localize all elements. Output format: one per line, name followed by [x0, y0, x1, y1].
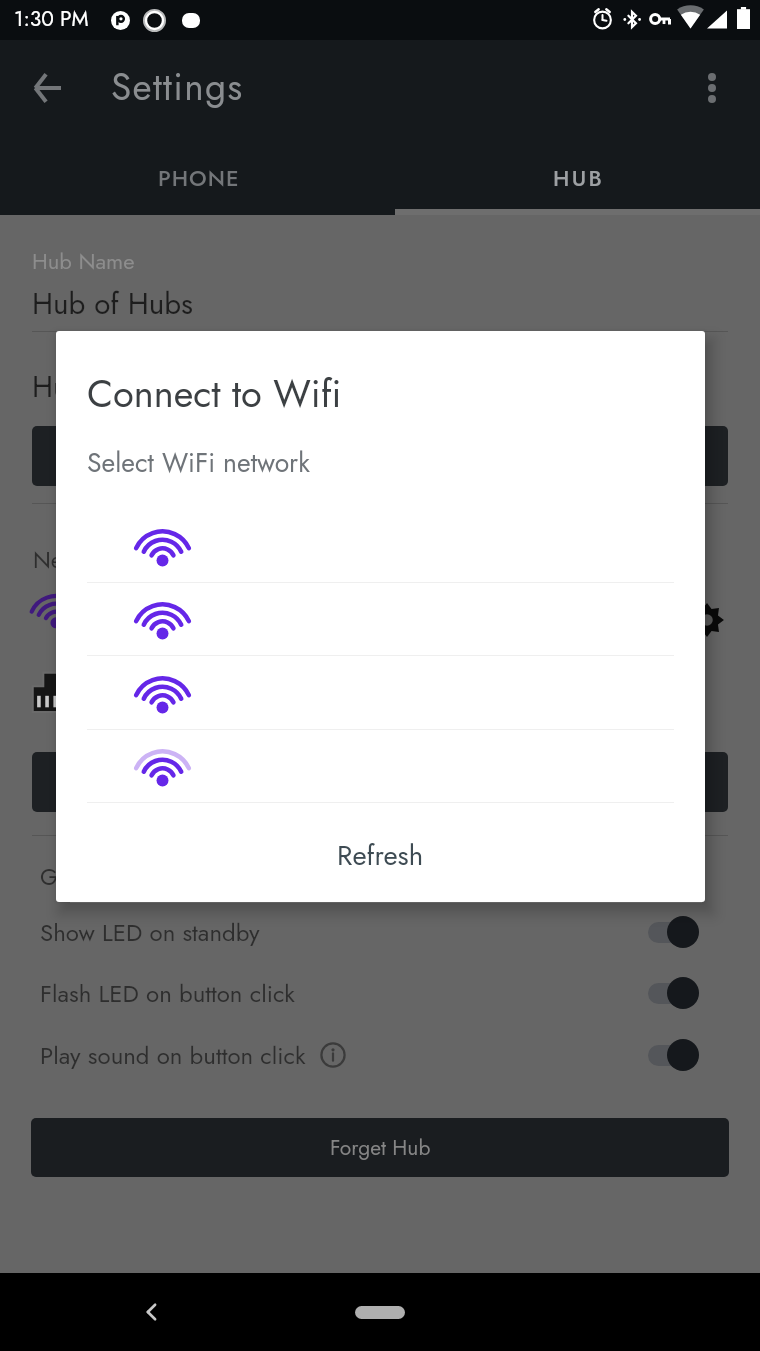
- staticText: Select WiFi network: [87, 444, 310, 482]
- staticText: PHONE: [158, 162, 240, 194]
- button[interactable]: [56, 509, 705, 583]
- staticText: HUB: [553, 162, 605, 194]
- button[interactable]: [32, 752, 728, 812]
- staticText: 1:30 PM: [14, 4, 89, 34]
- button[interactable]: Refresh: [56, 802, 705, 902]
- staticText: Network: [33, 543, 115, 576]
- button[interactable]: [56, 582, 705, 656]
- button[interactable]: Play sound on button click: [40, 1024, 699, 1086]
- button[interactable]: Flash LED on button click: [40, 962, 699, 1024]
- staticText: Hub: [32, 365, 86, 408]
- button[interactable]: Home: [355, 1306, 405, 1319]
- staticText: General: [40, 860, 118, 893]
- button[interactable]: Back: [128, 1288, 176, 1336]
- button[interactable]: [56, 656, 705, 730]
- staticText: Settings: [111, 60, 244, 113]
- button[interactable]: PHONE: [0, 135, 380, 215]
- staticText: Forget Hub: [330, 1133, 431, 1163]
- button[interactable]: [32, 426, 728, 486]
- button[interactable]: [56, 729, 705, 803]
- staticText: Hub Name: [32, 245, 135, 277]
- staticText: Connect to Wifi: [87, 366, 342, 421]
- staticText: Flash LED on button click: [40, 976, 295, 1011]
- other: Back: [33, 74, 62, 102]
- button[interactable]: Wifi settings: [689, 602, 725, 638]
- button[interactable]: More options: [708, 73, 716, 103]
- staticText: Show LED on standby: [40, 915, 260, 950]
- staticText: Play sound on button click: [40, 1038, 306, 1073]
- staticText: Refresh: [337, 836, 424, 876]
- button[interactable]: Forget Hub: [31, 1118, 729, 1177]
- button[interactable]: HUB: [380, 135, 760, 215]
- staticText: Hub of Hubs: [32, 282, 193, 325]
- button[interactable]: Show LED on standby: [40, 901, 699, 963]
